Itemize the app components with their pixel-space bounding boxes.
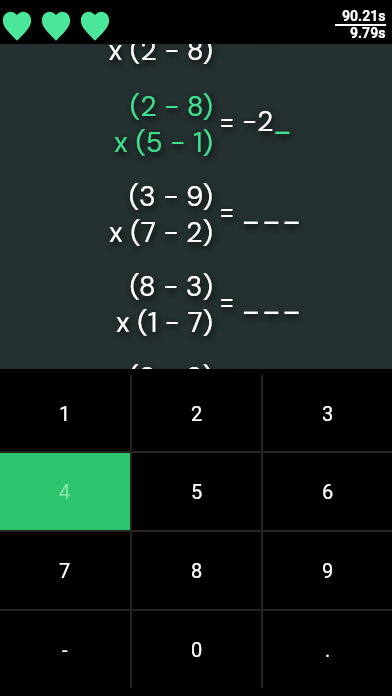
staticText: 2: [191, 402, 203, 425]
staticText: 90.21s: [342, 8, 386, 24]
staticText: 9.79s: [350, 25, 386, 41]
staticText: 9: [322, 559, 334, 582]
button[interactable]: 4: [0, 453, 130, 530]
button[interactable]: 0: [132, 611, 261, 688]
button[interactable]: 5: [132, 453, 261, 530]
staticText: 5: [191, 480, 203, 503]
button[interactable]: 9: [263, 532, 392, 609]
button[interactable]: 2: [132, 375, 261, 451]
staticText: .: [325, 638, 331, 661]
button[interactable]: .: [263, 611, 392, 688]
staticText: -: [62, 638, 68, 661]
staticText: = ___: [219, 193, 304, 229]
staticText: (3 - 9) x (7 - 2): [109, 178, 213, 250]
button[interactable]: -: [0, 611, 130, 688]
staticText: 8: [191, 559, 203, 582]
button[interactable]: 7: [0, 532, 130, 609]
staticText: (2 - 8) x (2 - 8): [108, 44, 213, 68]
staticText: 7: [59, 559, 71, 582]
staticText: (2 - 8) x (5 - 1): [114, 88, 213, 160]
staticText: (9 - 2) x (4 - 6): [107, 359, 213, 369]
staticText: 4: [59, 480, 71, 503]
staticText: = ___: [219, 283, 304, 319]
staticText: 1: [59, 402, 71, 425]
staticText: 0: [191, 638, 203, 661]
button[interactable]: 1: [0, 375, 130, 451]
button[interactable]: 8: [132, 532, 261, 609]
staticText: 3: [322, 402, 334, 425]
staticText: (8 - 3) x (1 - 7): [116, 268, 213, 340]
button[interactable]: 6: [263, 453, 392, 530]
staticText: 6: [322, 480, 334, 503]
staticText: = -2_: [219, 103, 292, 139]
button[interactable]: 3: [263, 375, 392, 451]
